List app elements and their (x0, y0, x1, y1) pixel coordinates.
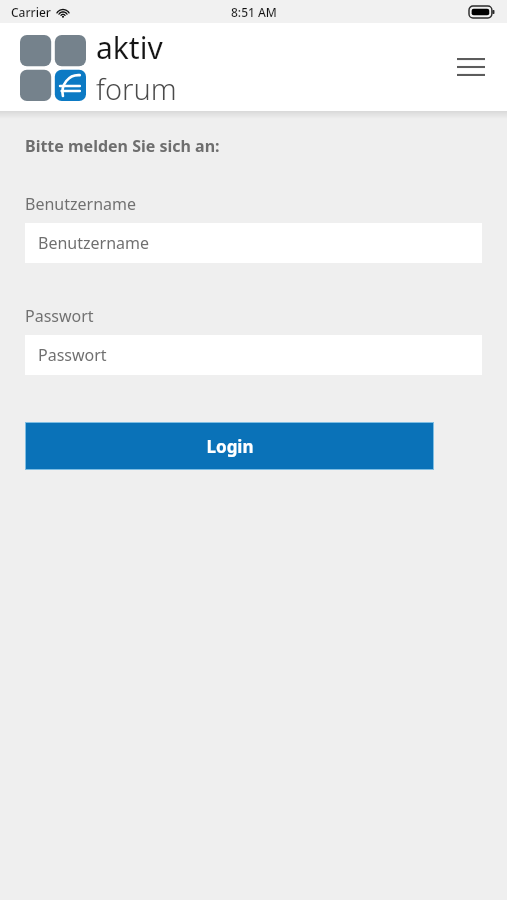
button[interactable]: Login (25, 422, 434, 470)
staticText: aktiv (96, 27, 163, 68)
staticText: Benutzername (38, 232, 149, 254)
button[interactable]: Benutzername (25, 223, 482, 263)
staticText: Carrier (11, 4, 51, 20)
staticText: Passwort (38, 344, 107, 366)
staticText: Benutzername (25, 193, 136, 215)
staticText: Login (206, 435, 254, 458)
staticText: Bitte melden Sie sich an: (25, 135, 220, 157)
staticText: Passwort (25, 305, 94, 327)
button[interactable]: Menu (447, 43, 495, 91)
button[interactable]: Passwort (25, 335, 482, 375)
staticText: forum (96, 69, 177, 108)
staticText: 8:51 AM (231, 4, 277, 20)
